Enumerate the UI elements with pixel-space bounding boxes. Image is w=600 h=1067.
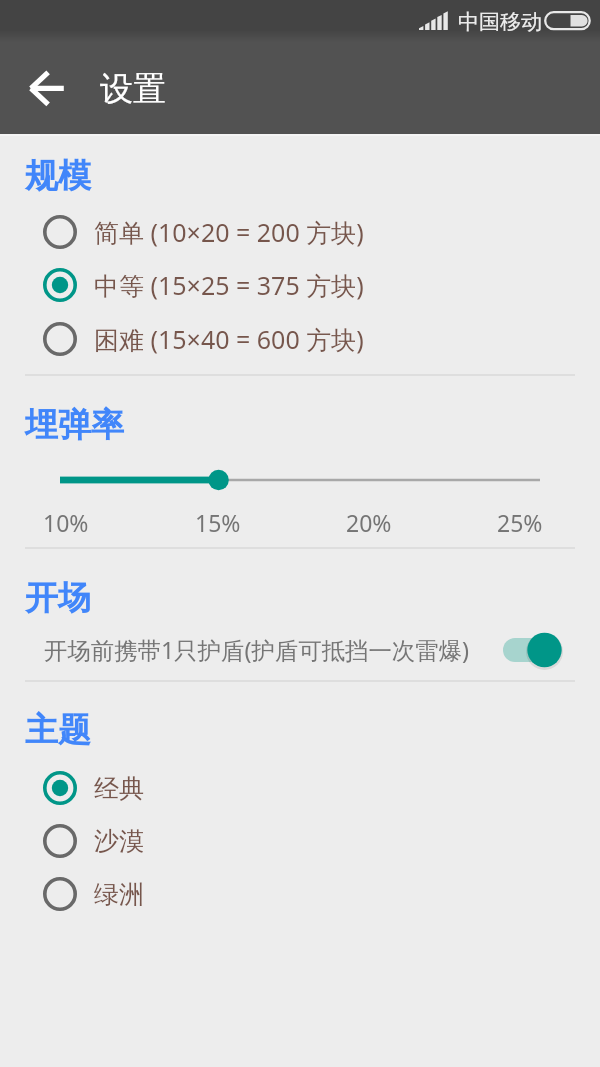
button[interactable]: 经典 [0, 762, 600, 814]
staticText: 沙漠 [94, 826, 144, 857]
staticText: 规模 [25, 155, 91, 197]
staticText: 设置 [100, 68, 166, 110]
button[interactable]: 开场前携带1只护盾(护盾可抵挡一次雷爆) [0, 619, 600, 681]
staticText: 中等 (15×25 = 375 方块) [94, 268, 364, 302]
button[interactable]: 绿洲 [0, 868, 600, 920]
staticText: 绿洲 [94, 879, 144, 910]
staticText: 15% [195, 507, 241, 538]
button[interactable]: Back [17, 58, 77, 118]
staticText: 10% [43, 507, 89, 538]
staticText: 中国移动 [458, 9, 542, 35]
staticText: 开场 [25, 577, 91, 619]
staticText: 经典 [94, 773, 144, 804]
staticText: 开场前携带1只护盾(护盾可抵挡一次雷爆) [44, 634, 470, 666]
staticText: 简单 (10×20 = 200 方块) [94, 215, 364, 249]
staticText: 25% [497, 507, 543, 538]
button[interactable]: 沙漠 [0, 815, 600, 867]
staticText: 主题 [25, 709, 91, 751]
button[interactable]: 中等 (15×25 = 375 方块) [0, 259, 600, 311]
staticText: 困难 (15×40 = 600 方块) [94, 322, 364, 356]
button[interactable]: Mine density [0, 458, 600, 502]
staticText: 埋弹率 [25, 404, 124, 446]
button[interactable]: Start with one shield, on [502, 630, 564, 670]
button[interactable]: 困难 (15×40 = 600 方块) [0, 313, 600, 365]
staticText: 20% [346, 507, 392, 538]
button[interactable]: 简单 (10×20 = 200 方块) [0, 206, 600, 258]
